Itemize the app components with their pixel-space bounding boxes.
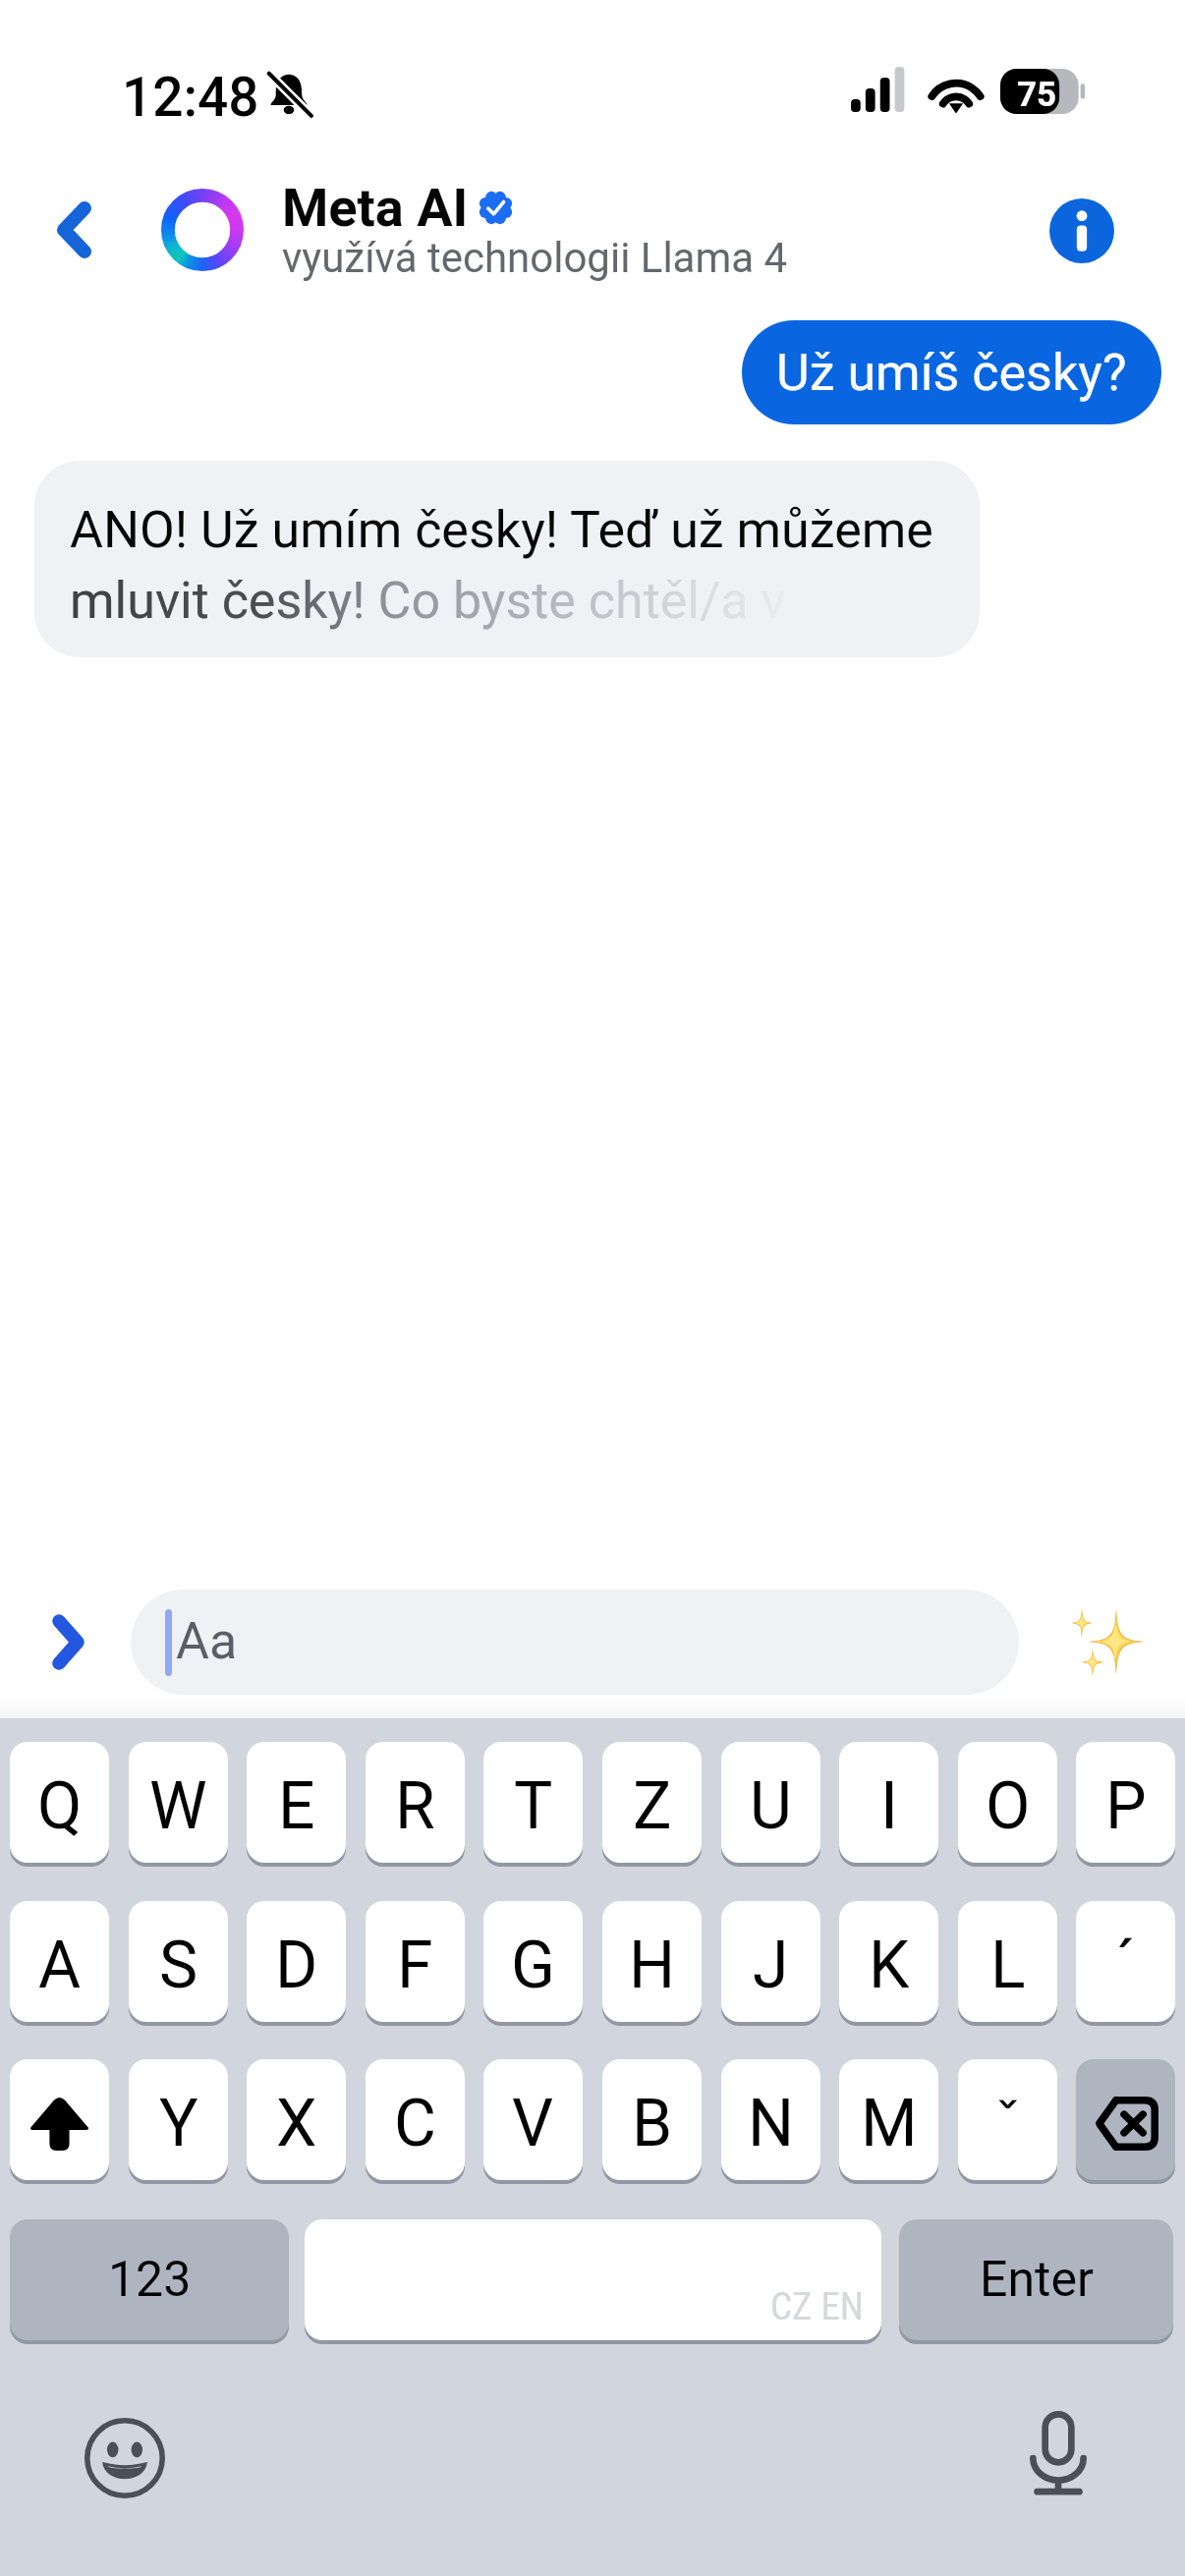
staticText: F [397, 1928, 433, 2003]
staticText: mluvit česky! Co byste chtěl/a v [70, 571, 786, 631]
button[interactable]: ˇ [958, 2059, 1057, 2180]
button[interactable]: S [129, 1901, 228, 2022]
staticText: I [880, 1768, 898, 1844]
button[interactable]: E [247, 1742, 346, 1863]
staticText: Aa [176, 1611, 238, 1671]
staticText: A [38, 1928, 82, 2003]
button[interactable]: A [10, 1901, 109, 2022]
staticText: K [869, 1928, 910, 2003]
button[interactable]: Enter [899, 2219, 1173, 2340]
button[interactable]: ANO! Už umím česky! Teď už můžeme [34, 461, 980, 657]
button[interactable]: J [721, 1901, 820, 2022]
button[interactable]: Show actions [21, 1595, 115, 1689]
staticText: M [861, 2086, 918, 2161]
staticText: P [1105, 1768, 1147, 1844]
staticText: ´ [1115, 1928, 1136, 2003]
button[interactable]: R [366, 1742, 465, 1863]
staticText: 12:48 [122, 66, 259, 129]
button[interactable]: Voice input [1009, 2404, 1107, 2502]
staticText: Y [159, 2086, 198, 2161]
staticText: využívá technologii Llama 4 [282, 234, 788, 282]
button[interactable]: V [483, 2059, 583, 2180]
staticText: H [629, 1928, 676, 2003]
button[interactable]: U [721, 1742, 820, 1863]
staticText: G [511, 1928, 555, 2003]
staticText: T [514, 1768, 553, 1844]
staticText: Už umíš česky? [776, 343, 1127, 403]
staticText: N [748, 2086, 795, 2161]
staticText: O [986, 1768, 1031, 1844]
button[interactable]: Backspace [1076, 2059, 1175, 2180]
button[interactable]: C [366, 2059, 465, 2180]
staticText: W [149, 1768, 207, 1844]
staticText: Enter [980, 2251, 1094, 2309]
button[interactable]: G [483, 1901, 583, 2022]
staticText: L [990, 1928, 1026, 2003]
staticText: X [276, 2086, 317, 2161]
button[interactable]: Space [305, 2219, 881, 2340]
button[interactable]: K [839, 1901, 938, 2022]
staticText: U [750, 1768, 792, 1844]
staticText: 75 [1017, 75, 1057, 115]
staticText: S [159, 1928, 198, 2003]
staticText: Q [37, 1768, 83, 1844]
staticText: C [394, 2086, 436, 2161]
button[interactable]: Q [10, 1742, 109, 1863]
staticText: J [753, 1928, 789, 2003]
staticText: CZ EN [770, 2284, 865, 2329]
button[interactable]: 123 [10, 2219, 289, 2340]
staticText: ANO! Už umím česky! Teď už můžeme [70, 500, 933, 560]
button[interactable]: Už umíš česky? [742, 320, 1161, 424]
button[interactable]: Shift [10, 2059, 109, 2180]
button[interactable]: Y [129, 2059, 228, 2180]
button[interactable]: Aa [131, 1590, 1019, 1695]
button[interactable]: X [247, 2059, 346, 2180]
button[interactable]: Conversation info [1035, 184, 1129, 278]
staticText: D [275, 1928, 318, 2003]
staticText: Z [633, 1768, 672, 1844]
button[interactable]: ´ [1076, 1901, 1175, 2022]
staticText: Meta AI [282, 177, 469, 239]
staticText: V [512, 2086, 554, 2161]
button[interactable]: Emoji [76, 2409, 174, 2507]
button[interactable]: H [602, 1901, 702, 2022]
button[interactable]: O [958, 1742, 1057, 1863]
button[interactable]: D [247, 1901, 346, 2022]
button[interactable]: B [602, 2059, 702, 2180]
button[interactable]: I [839, 1742, 938, 1863]
button[interactable]: M [839, 2059, 938, 2180]
staticText: ˇ [994, 2088, 1022, 2159]
button[interactable]: F [366, 1901, 465, 2022]
button[interactable]: N [721, 2059, 820, 2180]
staticText: R [395, 1768, 435, 1844]
staticText: 123 [108, 2251, 192, 2309]
button[interactable]: Back [27, 183, 121, 277]
button[interactable]: P [1076, 1742, 1175, 1863]
button[interactable]: AI suggestions [1051, 1582, 1171, 1702]
staticText: B [632, 2086, 673, 2161]
button[interactable]: L [958, 1901, 1057, 2022]
button[interactable]: W [129, 1742, 228, 1863]
staticText: E [278, 1768, 315, 1844]
button[interactable]: Z [602, 1742, 702, 1863]
button[interactable]: T [483, 1742, 583, 1863]
